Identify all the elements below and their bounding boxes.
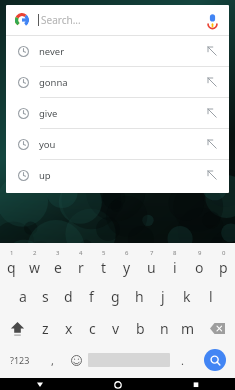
button[interactable]: h [127, 280, 151, 312]
staticText: v [112, 319, 120, 338]
button[interactable]: c [80, 312, 104, 344]
staticText: 1 [10, 249, 14, 257]
staticText: 4 [79, 249, 83, 257]
button[interactable]: Home [79, 378, 157, 390]
button[interactable]: Recent apps [157, 378, 235, 390]
staticText: p [219, 258, 228, 277]
staticText: give [39, 107, 58, 120]
button[interactable]: j [151, 280, 175, 312]
staticText: t [101, 258, 107, 277]
staticText: u [147, 258, 156, 277]
button[interactable]: Backspace [200, 312, 235, 344]
button[interactable]: Emoji [64, 344, 88, 376]
staticText: 0 [222, 249, 226, 257]
staticText: h [135, 287, 144, 306]
button[interactable]: m [176, 312, 200, 344]
staticText: 6 [125, 249, 129, 257]
staticText: a [19, 287, 27, 306]
staticText: m [181, 319, 195, 338]
button[interactable]: Shift [0, 312, 34, 344]
button[interactable]: s [34, 280, 57, 312]
staticText: x [65, 319, 73, 338]
button[interactable]: ?123 [0, 344, 40, 376]
staticText: f [89, 287, 94, 306]
button[interactable]: Insert give into search box [201, 102, 223, 124]
button[interactable]: d [57, 280, 80, 312]
staticText: . [181, 353, 184, 368]
button[interactable]: Search... [6, 5, 229, 35]
staticText: ?123 [10, 354, 30, 366]
staticText: Search... [41, 13, 81, 27]
button[interactable]: Back [0, 378, 79, 390]
staticText: w [29, 258, 41, 277]
staticText: e [54, 258, 62, 277]
staticText: r [78, 258, 84, 277]
button[interactable]: 2 [23, 246, 46, 280]
button[interactable]: l [199, 280, 223, 312]
button[interactable]: f [80, 280, 103, 312]
staticText: l [209, 287, 213, 306]
staticText: , [51, 353, 54, 368]
staticText: up [39, 169, 51, 182]
button[interactable]: 5 [92, 246, 115, 280]
staticText: 8 [173, 249, 177, 257]
staticText: i [173, 258, 177, 277]
button[interactable]: 8 [163, 246, 187, 280]
staticText: 3 [56, 249, 60, 257]
staticText: q [7, 258, 16, 277]
staticText: s [42, 287, 49, 306]
staticText: 2 [33, 249, 37, 257]
button[interactable]: , [40, 344, 64, 376]
button[interactable]: v [104, 312, 128, 344]
button[interactable]: you [6, 129, 229, 159]
button[interactable]: 3 [46, 246, 69, 280]
staticText: j [161, 287, 165, 306]
staticText: b [136, 319, 145, 338]
button[interactable]: Insert gonna into search box [201, 71, 223, 93]
staticText: 5 [102, 249, 106, 257]
staticText: 7 [150, 249, 154, 257]
button[interactable]: Insert never into search box [201, 40, 223, 62]
button[interactable]: gonna [6, 67, 229, 97]
button[interactable]: give [6, 98, 229, 128]
staticText: you [39, 138, 56, 151]
button[interactable]: Voice search [199, 7, 225, 33]
button[interactable]: g [103, 280, 127, 312]
button[interactable]: 4 [69, 246, 92, 280]
button[interactable]: 7 [139, 246, 163, 280]
button[interactable]: up [6, 160, 229, 190]
button[interactable]: 1 [0, 246, 23, 280]
staticText: y [123, 258, 131, 277]
button[interactable]: 0 [211, 246, 235, 280]
button[interactable]: x [57, 312, 80, 344]
button[interactable]: a [11, 280, 34, 312]
button[interactable]: b [128, 312, 152, 344]
staticText: never [39, 45, 65, 58]
button[interactable]: . [170, 344, 194, 376]
staticText: o [195, 258, 204, 277]
staticText: d [64, 287, 73, 306]
button[interactable]: 9 [187, 246, 211, 280]
button[interactable]: 6 [115, 246, 139, 280]
staticText: k [183, 287, 191, 306]
staticText: gonna [39, 76, 68, 89]
button[interactable]: n [152, 312, 176, 344]
staticText: 9 [198, 249, 202, 257]
staticText: n [160, 319, 169, 338]
button[interactable]: never [6, 36, 229, 66]
staticText: c [89, 319, 96, 338]
button[interactable]: Search [194, 344, 235, 376]
button[interactable]: k [175, 280, 199, 312]
button[interactable]: Insert up into search box [201, 164, 223, 186]
staticText: g [111, 287, 120, 306]
button[interactable]: z [34, 312, 57, 344]
staticText: z [42, 319, 49, 338]
button[interactable]: Insert you into search box [201, 133, 223, 155]
